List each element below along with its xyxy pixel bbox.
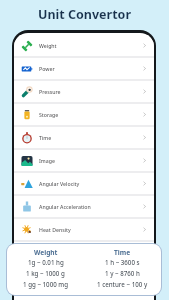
staticText: Image [39,157,141,164]
staticText: 1 centure ~ 100 y [97,280,148,288]
button[interactable]: Image [14,150,154,173]
button[interactable]: Storage [14,104,154,127]
staticText: Time [39,134,141,141]
staticText: Weight [34,248,58,257]
button[interactable]: Angular Acceleration [14,196,154,219]
staticText: Weight [39,42,141,49]
staticText: Storage [39,111,141,118]
staticText: Pressure [39,88,141,95]
staticText: Heat Density [39,226,141,233]
staticText: Angular Velocity [39,180,141,187]
staticText: 1g ~ 0.01 hg [28,258,64,266]
button[interactable]: Pressure [14,81,154,104]
button[interactable]: Heat Density [14,219,154,242]
staticText: Unit Convertor [0,6,169,23]
staticText: 1 kg ~ 1000 g [26,269,65,277]
staticText: Angular Acceleration [39,203,141,210]
button[interactable]: Angular Velocity [14,173,154,196]
staticText: 1 y ~ 8760 h [105,269,140,277]
staticText: Time [114,248,131,257]
button[interactable]: Weight [14,35,154,58]
staticText: Power [39,65,141,72]
button[interactable]: Time [14,127,154,150]
button[interactable]: Power [14,58,154,81]
staticText: 1 h ~ 3600 s [105,258,140,266]
staticText: 1 gg ~ 1000 mg [23,280,69,288]
